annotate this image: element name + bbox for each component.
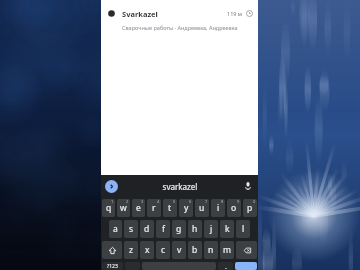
staticText: o [231, 202, 237, 214]
button[interactable]: l [236, 220, 250, 238]
button[interactable]: n [204, 241, 218, 259]
staticText: 8 [221, 199, 224, 204]
button[interactable]: k [220, 220, 234, 238]
staticText: i [217, 202, 220, 214]
staticText: a [113, 223, 118, 235]
button[interactable]: Search [235, 262, 257, 270]
staticText: g [176, 223, 182, 235]
staticText: u [199, 202, 205, 214]
staticText: q [106, 202, 112, 214]
staticText: 1 [111, 199, 114, 204]
staticText: b [192, 244, 198, 256]
button[interactable]: c [156, 241, 170, 259]
staticText: y [184, 202, 189, 214]
button[interactable]: z [124, 241, 138, 259]
button[interactable]: e [132, 199, 145, 217]
staticText: m [223, 244, 231, 256]
button[interactable]: s [124, 220, 138, 238]
button[interactable]: r [147, 199, 161, 217]
button[interactable]: o [227, 199, 241, 217]
button[interactable]: v [172, 241, 186, 259]
staticText: 2 [126, 199, 129, 204]
staticText: l [242, 223, 245, 235]
button[interactable]: Voice input [242, 180, 254, 192]
staticText: x [145, 244, 150, 256]
staticText: ?123 [107, 263, 118, 270]
staticText: Svarkazel [122, 9, 158, 19]
staticText: p [247, 202, 253, 214]
staticText: 5 [173, 199, 176, 204]
staticText: d [144, 223, 150, 235]
staticText: k [225, 223, 230, 235]
staticText: r [152, 202, 156, 214]
staticText: 0 [253, 199, 256, 204]
button[interactable]: Backspace [236, 241, 257, 259]
staticText: t [168, 202, 172, 214]
staticText: z [129, 244, 133, 256]
staticText: Сварочные работы · Андреевка, Андреевка [122, 24, 238, 31]
staticText: svarkazel [118, 181, 242, 192]
staticText: s [129, 223, 134, 235]
button[interactable]: Forward [105, 180, 118, 193]
staticText: f [162, 223, 165, 235]
staticText: 7 [205, 199, 208, 204]
button[interactable]: f [156, 220, 170, 238]
staticText: c [161, 244, 166, 256]
staticText: 3 [141, 199, 144, 204]
button[interactable]: x [140, 241, 154, 259]
button[interactable]: t [163, 199, 177, 217]
staticText: j [210, 223, 213, 235]
staticText: n [208, 244, 214, 256]
button[interactable]: Symbols [102, 262, 123, 270]
button[interactable]: j [204, 220, 218, 238]
staticText: 9 [237, 199, 240, 204]
button[interactable]: y [179, 199, 193, 217]
staticText: v [177, 244, 182, 256]
button[interactable]: a [109, 220, 122, 238]
staticText: 6 [189, 199, 192, 204]
button[interactable]: m [220, 241, 234, 259]
button[interactable]: w [117, 199, 130, 217]
button[interactable]: b [188, 241, 202, 259]
button[interactable]: h [188, 220, 202, 238]
button[interactable]: d [140, 220, 154, 238]
staticText: 4 [157, 199, 160, 204]
staticText: h [192, 223, 198, 235]
button[interactable]: i [211, 199, 225, 217]
button[interactable]: Shift [102, 241, 122, 259]
button[interactable]: g [172, 220, 186, 238]
button[interactable]: . [218, 262, 233, 270]
button[interactable]: Svarkazel [101, 0, 258, 31]
staticText: w [120, 202, 127, 214]
staticText: 119 м [227, 10, 243, 17]
button[interactable]: q [102, 199, 115, 217]
staticText: e [136, 202, 141, 214]
button[interactable]: u [195, 199, 209, 217]
staticText: . [225, 262, 227, 270]
button[interactable]: p [243, 199, 257, 217]
